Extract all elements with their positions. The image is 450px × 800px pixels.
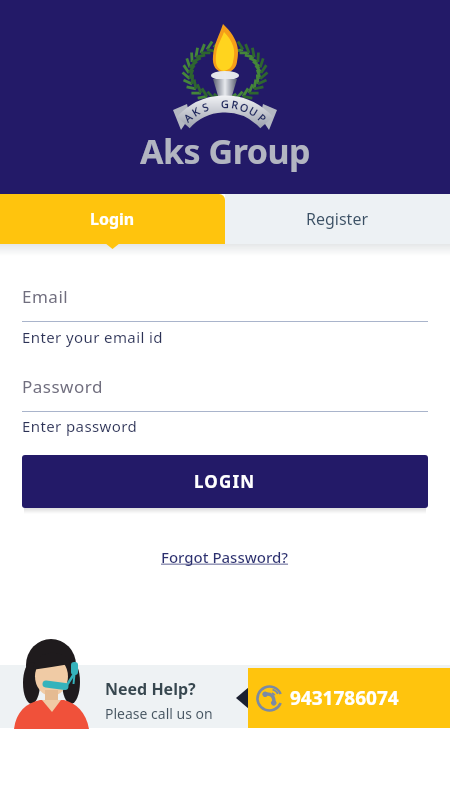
staticText: Please call us on [105,704,213,723]
button[interactable]: Login [0,194,225,244]
staticText: Login [90,208,135,230]
staticText: 9431786074 [290,685,399,711]
button[interactable]: Register [225,194,450,244]
staticText: Need Help? [105,678,196,700]
staticText: Enter your email id [22,327,163,347]
staticText: Enter password [22,416,138,436]
staticText: Password [22,375,103,398]
button[interactable]: Forgot Password? [161,547,289,567]
staticText: Register [306,208,369,230]
staticText: Aks Group [140,128,310,174]
button[interactable]: LOGIN [22,455,428,508]
staticText: Forgot Password? [161,547,289,567]
staticText: Email [22,285,69,308]
button[interactable]: 9431786074 [248,668,450,728]
staticText: LOGIN [194,470,256,493]
